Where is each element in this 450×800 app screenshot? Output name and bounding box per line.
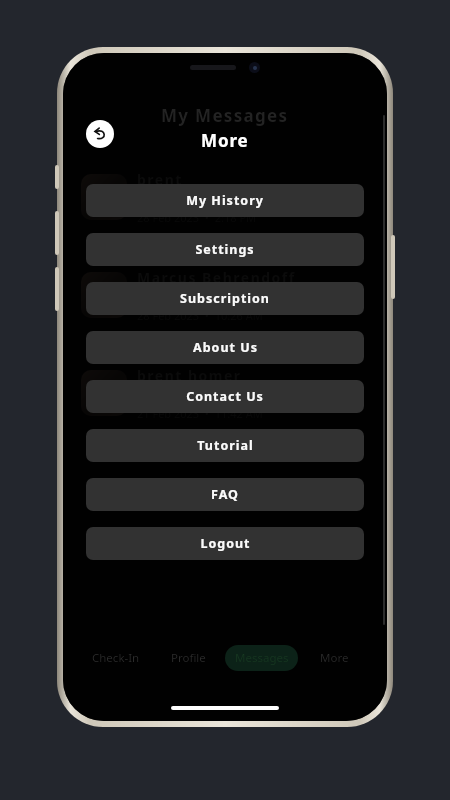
button[interactable]: Profile — [171, 645, 206, 671]
staticText: Subscription — [180, 290, 270, 307]
staticText: brent homer — [137, 366, 242, 385]
staticText: Logout — [200, 535, 251, 552]
button[interactable]: More — [320, 645, 349, 671]
button[interactable]: Messages — [225, 645, 298, 671]
staticText: 28 Feb 2023 • 10:26 AM — [137, 308, 263, 322]
staticText: Messages — [235, 650, 289, 666]
staticText: More — [320, 650, 349, 666]
staticText: now it ticks — [137, 388, 195, 403]
button[interactable]: My History — [86, 184, 364, 217]
button[interactable]: Check-In — [92, 645, 140, 671]
staticText: My History — [186, 192, 264, 209]
staticText: My Messages — [161, 104, 289, 127]
staticText: Contact Us — [186, 388, 264, 405]
button[interactable]: FAQ — [86, 478, 364, 511]
staticText: Settings — [195, 241, 255, 258]
button[interactable]: Back — [86, 120, 114, 148]
staticText: brent — [137, 170, 183, 189]
staticText: About Us — [193, 339, 258, 356]
staticText: 21 Feb 2023 • 11:42 AM — [137, 406, 263, 420]
staticText: Tutorial — [197, 437, 254, 454]
button[interactable]: Logout — [86, 527, 364, 560]
staticText: Marcus Behrendoff — [137, 268, 296, 287]
button[interactable]: Tutorial — [86, 429, 364, 462]
button[interactable]: Settings — [86, 233, 364, 266]
staticText: 28 Feb 2023 • 2:18 PM — [137, 210, 257, 224]
button[interactable]: Contact Us — [86, 380, 364, 413]
staticText: FAQ — [211, 486, 239, 503]
button[interactable]: About Us — [86, 331, 364, 364]
staticText: Check-In — [92, 650, 140, 666]
staticText: More — [201, 129, 249, 152]
staticText: Profile — [171, 650, 206, 666]
button[interactable]: Subscription — [86, 282, 364, 315]
